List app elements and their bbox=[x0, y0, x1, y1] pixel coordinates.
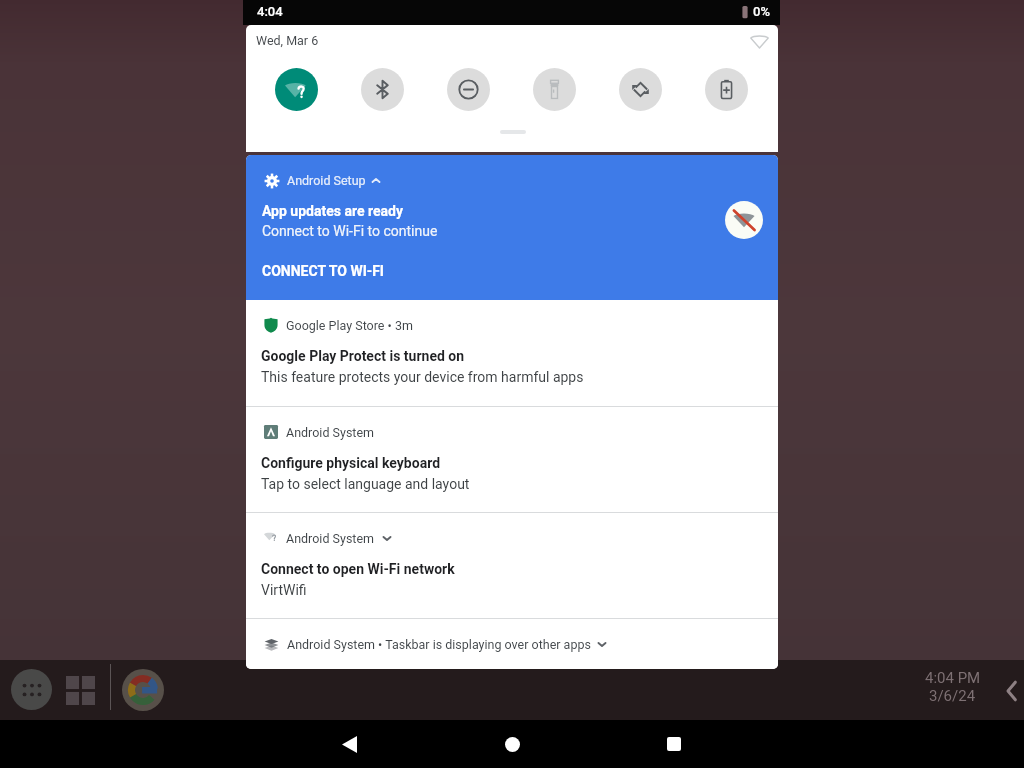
staticText: 4:04 bbox=[257, 4, 283, 19]
staticText: Connect to open Wi-Fi network bbox=[261, 561, 455, 577]
staticText: Android Setup bbox=[287, 173, 366, 188]
button[interactable]: Google Play Store • 3m bbox=[246, 300, 778, 406]
staticText: Android System bbox=[286, 425, 375, 440]
button[interactable]: Home bbox=[488, 720, 536, 768]
button[interactable]: CONNECT TO WI-FI bbox=[256, 258, 390, 284]
staticText: This feature protects your device from h… bbox=[261, 369, 584, 385]
staticText: Android System bbox=[286, 531, 375, 546]
button[interactable]: Auto-rotate bbox=[619, 68, 662, 111]
button[interactable]: Android System • Taskbar is displaying o… bbox=[246, 619, 778, 669]
staticText: Google Play Store • 3m bbox=[286, 318, 413, 333]
staticText: 0% bbox=[753, 4, 770, 19]
staticText: Connect to Wi-Fi to continue bbox=[262, 223, 438, 239]
staticText: Wed, Mar 6 bbox=[256, 33, 319, 48]
button[interactable]: Android System bbox=[246, 513, 778, 618]
button[interactable]: Recent apps bbox=[650, 720, 698, 768]
button[interactable]: Back bbox=[325, 720, 373, 768]
button[interactable]: Wi-Fi bbox=[275, 68, 318, 111]
staticText: Google Play Protect is turned on bbox=[261, 348, 465, 364]
button[interactable]: All apps bbox=[11, 669, 52, 710]
button[interactable]: Recent apps bbox=[61, 671, 99, 709]
button[interactable]: Wi-Fi status bbox=[746, 28, 772, 54]
button[interactable]: Battery Saver bbox=[705, 68, 748, 111]
button[interactable]: Flashlight bbox=[533, 68, 576, 111]
staticText: CONNECT TO WI-FI bbox=[262, 263, 384, 279]
button[interactable]: Bluetooth bbox=[361, 68, 404, 111]
staticText: Configure physical keyboard bbox=[261, 455, 441, 471]
staticText: Tap to select language and layout bbox=[261, 476, 470, 492]
button[interactable]: Wi-Fi disconnected bbox=[725, 201, 763, 239]
button[interactable]: Google Search bbox=[122, 669, 164, 711]
button[interactable]: Expand taskbar bbox=[998, 678, 1024, 704]
staticText: Android System • Taskbar is displaying o… bbox=[287, 637, 591, 652]
staticText: App updates are ready bbox=[262, 203, 403, 219]
staticText: 3/6/24 bbox=[929, 687, 976, 705]
button[interactable]: Do not disturb bbox=[447, 68, 490, 111]
button[interactable]: Android System bbox=[246, 407, 778, 512]
staticText: VirtWifi bbox=[261, 582, 307, 598]
staticText: 4:04 PM bbox=[925, 669, 981, 687]
